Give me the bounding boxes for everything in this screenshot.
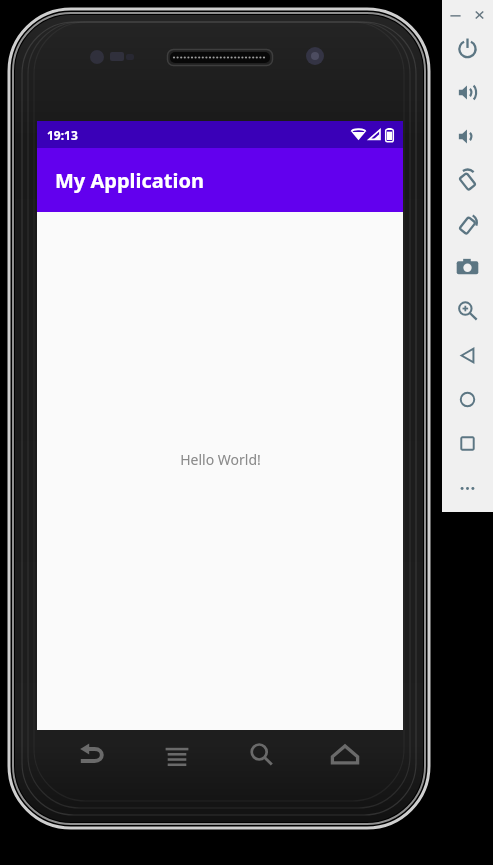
button[interactable]: Menu	[162, 740, 192, 770]
button[interactable]: Zoom	[454, 298, 481, 325]
button[interactable]: Volume up	[454, 79, 481, 106]
button[interactable]: My Application	[37, 148, 403, 212]
button[interactable]: More	[454, 475, 481, 502]
button[interactable]: Minimize	[447, 6, 464, 23]
button[interactable]: Overview	[454, 430, 481, 457]
staticText: My Application	[55, 167, 204, 194]
button[interactable]: Rotate right	[454, 211, 481, 238]
button[interactable]: Home	[330, 740, 360, 770]
button[interactable]: Take screenshot	[454, 254, 481, 281]
button[interactable]: Back	[76, 740, 106, 770]
button[interactable]: Back	[454, 342, 481, 369]
staticText: 19:13	[47, 127, 78, 143]
button[interactable]: Close	[471, 6, 488, 23]
button[interactable]: Rotate left	[454, 167, 481, 194]
button[interactable]: Volume down	[454, 123, 481, 150]
button[interactable]: Home	[454, 386, 481, 413]
button[interactable]: Power	[454, 35, 481, 62]
button[interactable]: Search	[246, 740, 276, 770]
staticText: Hello World!	[180, 450, 261, 469]
